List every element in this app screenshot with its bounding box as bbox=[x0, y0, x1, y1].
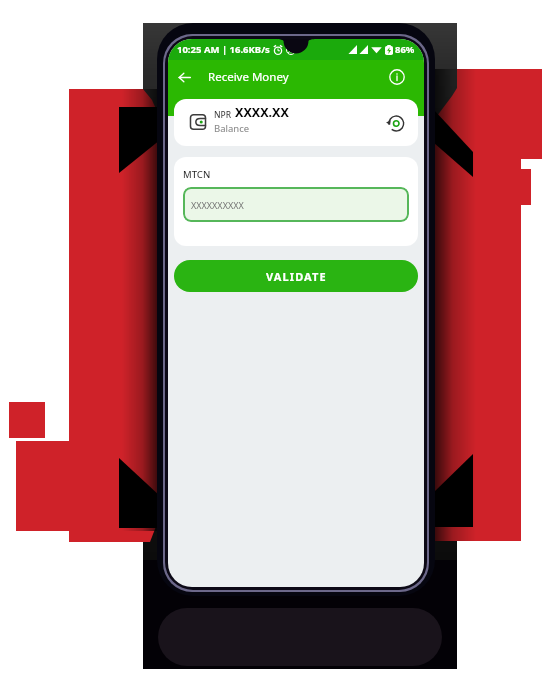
button[interactable]: Back bbox=[172, 65, 196, 89]
staticText: Receive Money bbox=[208, 69, 289, 85]
staticText: VALIDATE bbox=[266, 269, 327, 284]
staticText: MTCN bbox=[183, 168, 211, 181]
button[interactable]: NPR bbox=[174, 99, 418, 146]
staticText: 10:25 AM | 16.6KB/s bbox=[177, 43, 270, 56]
staticText: Balance bbox=[214, 122, 250, 135]
button[interactable]: XXXXXXXXXX bbox=[183, 187, 409, 222]
button[interactable]: Refresh balance bbox=[384, 112, 406, 134]
staticText: 86% bbox=[395, 43, 415, 56]
staticText: NPR bbox=[214, 109, 232, 121]
button[interactable]: VALIDATE bbox=[174, 260, 418, 292]
button[interactable]: Info bbox=[385, 65, 409, 89]
staticText: XXXXXXXXXX bbox=[191, 199, 244, 211]
staticText: XXXX.XX bbox=[235, 104, 289, 121]
